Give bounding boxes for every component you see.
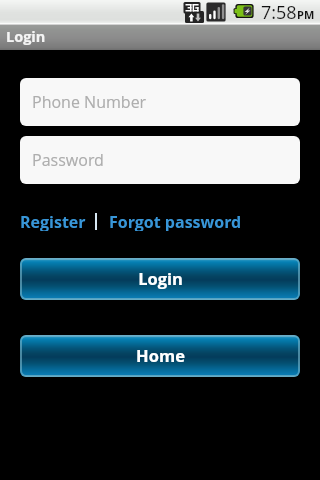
staticText: 7:58 [261, 0, 297, 25]
button[interactable]: Forgot password [109, 211, 242, 231]
staticText: Password [32, 149, 104, 171]
staticText: Phone Number [32, 91, 147, 113]
button[interactable]: Login [20, 258, 300, 300]
button[interactable]: Phone Number [20, 78, 300, 126]
staticText: PM [297, 7, 315, 22]
staticText: Home [136, 344, 185, 366]
button[interactable]: Home [20, 335, 300, 377]
staticText: Login [138, 267, 183, 289]
button[interactable]: Password [20, 136, 300, 184]
staticText: Register [20, 211, 86, 231]
button[interactable]: Register [20, 211, 86, 231]
staticText: Login [6, 27, 46, 47]
staticText: Forgot password [109, 211, 242, 231]
